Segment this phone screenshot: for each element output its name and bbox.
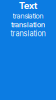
staticText: translation <box>10 29 45 38</box>
staticText: translation <box>12 11 43 20</box>
staticText: Text <box>19 0 37 11</box>
staticText: translation <box>11 20 45 29</box>
